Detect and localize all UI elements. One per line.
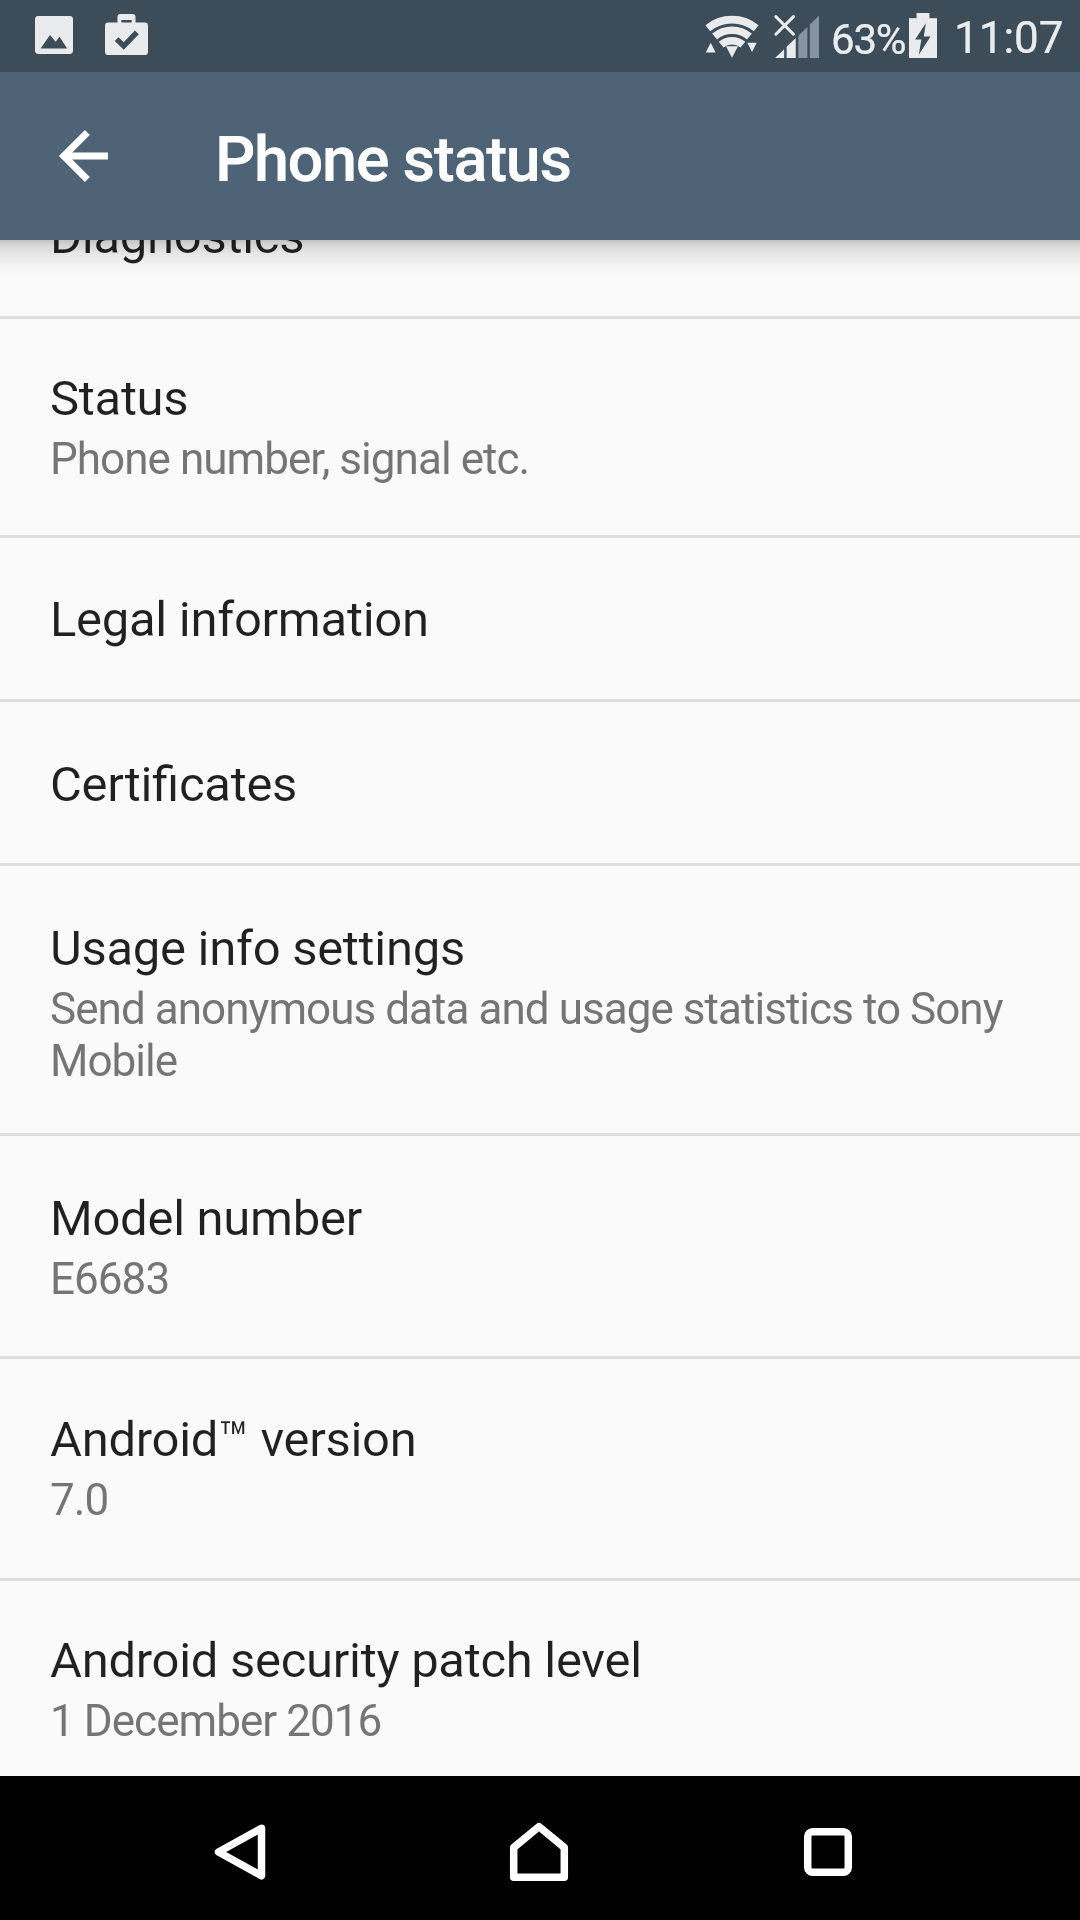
staticText: Phone status [215,123,571,197]
button[interactable]: Navigate up [36,108,132,204]
button[interactable]: Model number [0,1136,1080,1356]
staticText: Android™ version [50,1411,417,1468]
button[interactable]: Android™ version [0,1359,1080,1578]
button[interactable]: Recent apps [756,1780,900,1920]
staticText: Certificates [50,756,298,813]
staticText: Usage info settings [50,920,465,977]
staticText: 1 December 2016 [50,1695,382,1747]
button[interactable]: Status [0,319,1080,535]
button[interactable]: Certificates [0,702,1080,863]
staticText: 11:07 [954,12,1064,64]
staticText: Model number [50,1190,362,1247]
staticText: Diagnostics [50,208,305,265]
staticText: 63% [831,13,906,65]
button[interactable]: Diagnostics [0,0,1080,316]
button[interactable]: Home [467,1780,611,1920]
button[interactable]: Back [168,1780,312,1920]
button[interactable]: Android security patch level [0,1581,1080,1803]
button[interactable]: Usage info settings [0,866,1080,1133]
staticText: Status [50,370,189,427]
button[interactable]: Legal information [0,538,1080,699]
staticText: Android security patch level [50,1632,642,1689]
staticText: Send anonymous data and usage statistics… [50,983,1003,1035]
staticText: Phone number, signal etc. [50,433,530,485]
staticText: Mobile [50,1035,178,1087]
staticText: 7.0 [50,1474,109,1526]
staticText: Legal information [50,591,429,648]
staticText: E6683 [50,1253,170,1305]
